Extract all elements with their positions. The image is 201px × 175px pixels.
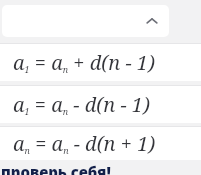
button[interactable]: an = an − d(n + 1) <box>0 127 201 160</box>
staticText: a1 = an − d(n − 1) <box>13 91 150 118</box>
button[interactable]: Collapse <box>2 5 169 37</box>
staticText: an = an − d(n + 1) <box>13 130 156 157</box>
button[interactable]: a1 = an − d(n − 1) <box>0 86 201 123</box>
staticText: проверь себя! <box>1 162 111 175</box>
staticText: a1 = an + d(n − 1) <box>13 49 155 76</box>
button[interactable]: a1 = an + d(n − 1) <box>0 44 201 81</box>
button[interactable]: проверь себя! <box>0 162 201 175</box>
